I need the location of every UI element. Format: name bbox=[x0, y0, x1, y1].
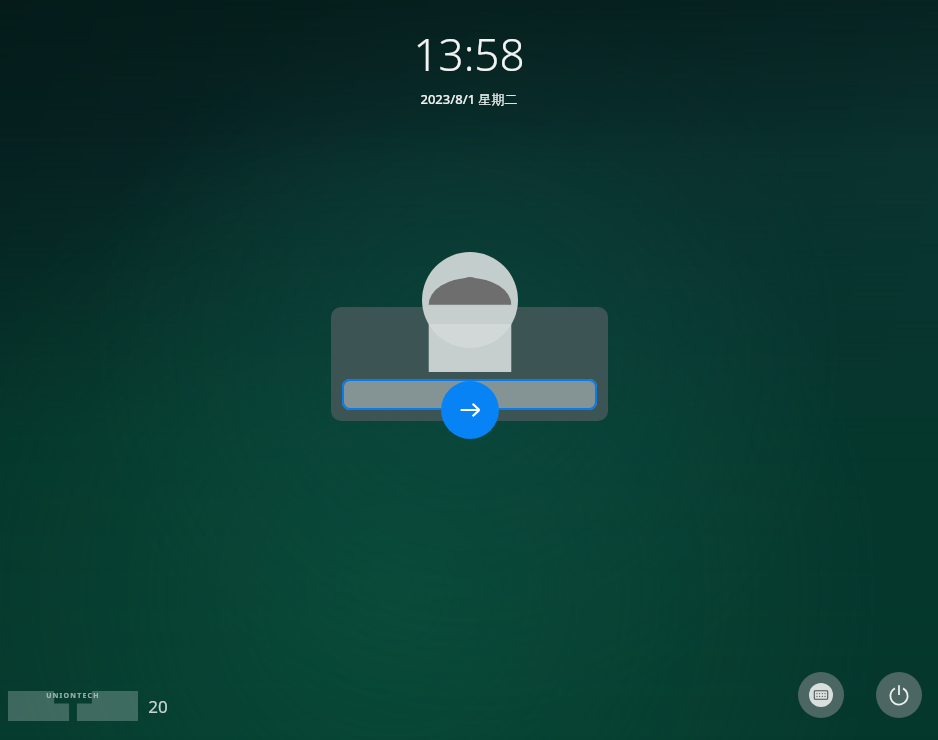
staticText: 13:58 bbox=[413, 24, 525, 84]
staticText: 2023/8/1 星期二 bbox=[420, 90, 518, 108]
staticText: 20 bbox=[148, 695, 168, 718]
button[interactable]: Sign in bbox=[441, 381, 499, 439]
button[interactable]: Input method bbox=[798, 672, 844, 718]
button[interactable]: 帐户 bbox=[342, 379, 597, 410]
button[interactable] bbox=[422, 252, 518, 348]
button[interactable]: Power bbox=[876, 672, 922, 718]
staticText: UNIONTECH bbox=[46, 691, 100, 701]
